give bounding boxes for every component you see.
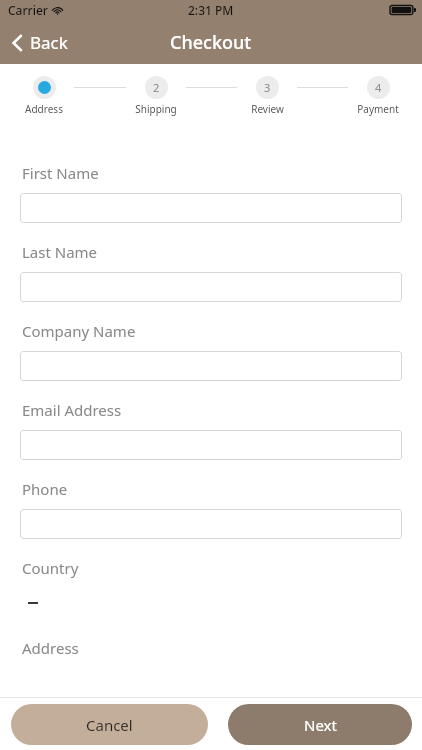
staticText: Cancel	[86, 715, 133, 735]
staticText: Address	[22, 638, 79, 658]
staticText: Carrier	[8, 2, 48, 18]
staticText: 2	[153, 80, 160, 95]
button[interactable]	[20, 509, 402, 539]
staticText: Address	[25, 102, 63, 116]
button[interactable]: 2	[126, 76, 186, 116]
button[interactable]	[0, 592, 422, 614]
staticText: Shipping	[135, 102, 177, 116]
button[interactable]	[20, 272, 402, 302]
button[interactable]	[20, 430, 402, 460]
staticText: Review	[251, 102, 284, 116]
button[interactable]: Cancel	[11, 704, 208, 745]
staticText: 2:31 PM	[188, 2, 234, 18]
staticText: Company Name	[22, 321, 136, 341]
button[interactable]	[20, 351, 402, 381]
staticText: Next	[304, 715, 337, 735]
staticText: 3	[264, 80, 271, 95]
button[interactable]: 4	[348, 76, 408, 116]
staticText: Back	[30, 31, 68, 54]
button[interactable]: Address	[14, 76, 74, 116]
button[interactable]: Next	[228, 704, 412, 745]
staticText: First Name	[22, 163, 99, 183]
staticText: Payment	[357, 102, 399, 116]
staticText: Checkout	[170, 30, 252, 55]
staticText: Last Name	[22, 242, 98, 262]
staticText: Email Address	[22, 400, 122, 420]
button[interactable]	[20, 193, 402, 223]
staticText: Country	[22, 558, 79, 578]
staticText: Phone	[22, 479, 68, 499]
button[interactable]: Back	[0, 25, 80, 60]
button[interactable]: 3	[237, 76, 297, 116]
staticText: 4	[375, 80, 382, 95]
